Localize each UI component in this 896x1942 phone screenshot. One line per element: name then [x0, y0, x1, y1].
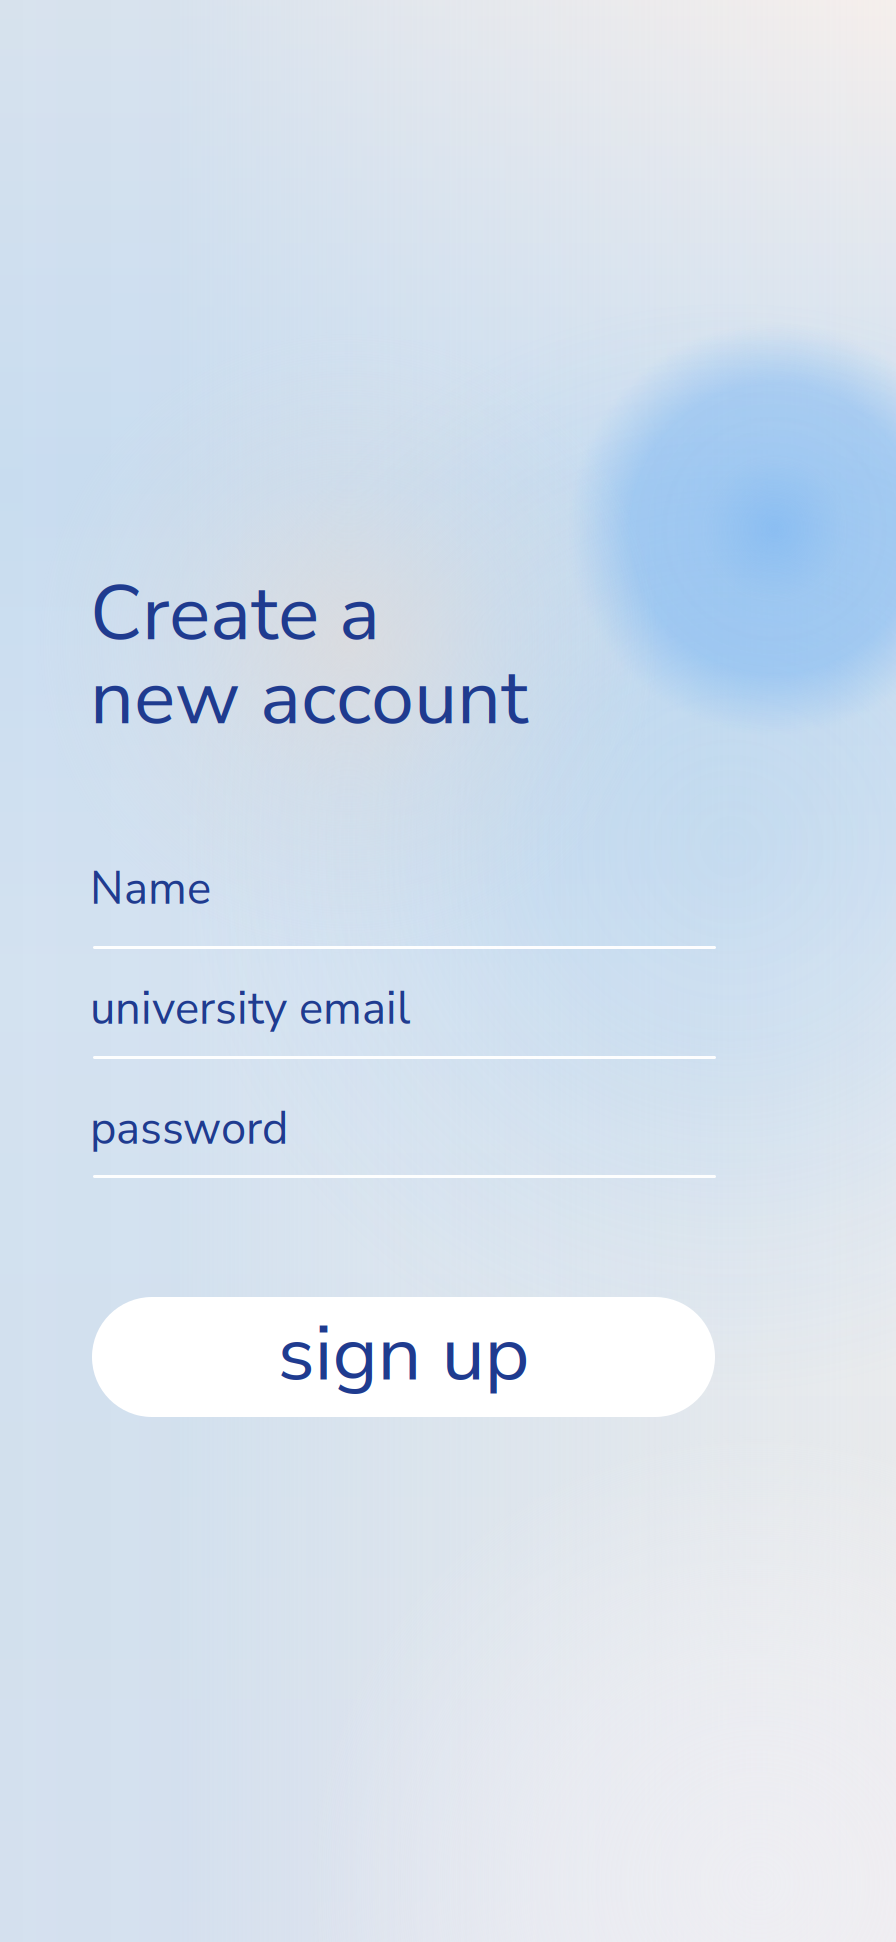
staticText: Create a	[90, 561, 380, 666]
staticText: sign up	[277, 1301, 529, 1407]
staticText: new account	[90, 645, 528, 750]
button[interactable]: sign up	[92, 1297, 715, 1417]
staticText: password	[90, 1098, 288, 1160]
staticText: university email	[90, 978, 410, 1040]
staticText: Name	[90, 858, 211, 920]
